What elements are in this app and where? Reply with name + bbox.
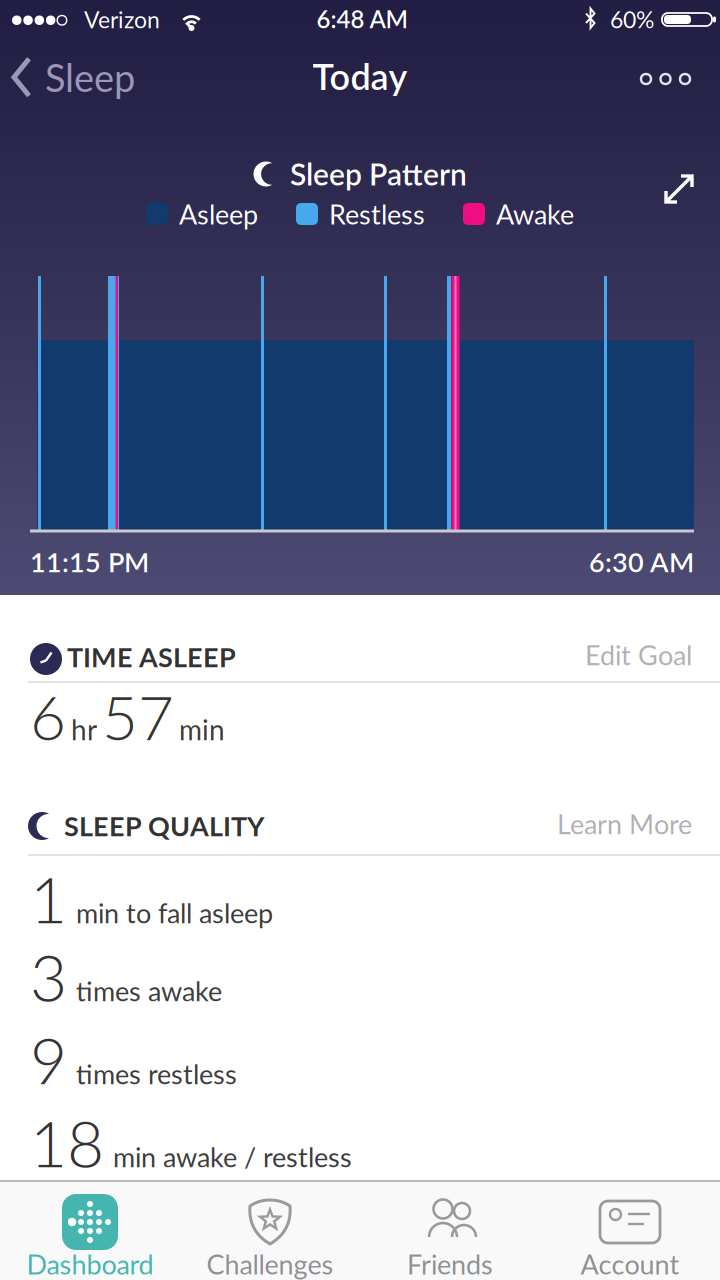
staticText: Sleep (45, 55, 135, 99)
button[interactable]: Edit Goal (0, 0, 692, 32)
staticText: 60% (610, 6, 654, 33)
staticText: times restless (76, 1058, 237, 1090)
staticText: min (179, 713, 225, 746)
button[interactable]: Challenges (0, 1180, 180, 1280)
button[interactable]: Dashboard (0, 1180, 180, 1280)
staticText: Account (580, 1248, 679, 1280)
staticText: Asleep (179, 198, 258, 230)
staticText: 6 (30, 680, 66, 752)
staticText: Challenges (206, 1248, 333, 1280)
staticText: times awake (76, 975, 222, 1007)
staticText: SLEEP QUALITY (64, 810, 264, 842)
staticText: 1 (30, 861, 67, 936)
button[interactable]: Friends (0, 1180, 180, 1280)
staticText: 18 (30, 1105, 104, 1180)
staticText: Awake (496, 198, 574, 230)
staticText: 6:48 AM (316, 5, 407, 33)
staticText: 9 (30, 1022, 67, 1097)
staticText: Restless (329, 198, 425, 230)
staticText: 11:15 PM (30, 546, 149, 578)
staticText: Edit Goal (585, 639, 692, 671)
staticText: Dashboard (26, 1248, 153, 1280)
staticText: 57 (102, 680, 174, 752)
staticText: Today (312, 55, 407, 97)
staticText: 3 (30, 939, 67, 1014)
staticText: 6:30 AM (589, 546, 694, 578)
staticText: min to fall asleep (76, 897, 273, 929)
staticText: hr (71, 713, 97, 746)
button[interactable] (0, 0, 34, 34)
staticText: Verizon (84, 6, 160, 33)
staticText: Sleep Pattern (290, 156, 467, 191)
staticText: Friends (407, 1248, 493, 1280)
button[interactable]: Sleep (0, 0, 124, 44)
button[interactable]: Account (0, 1180, 180, 1280)
staticText: Learn More (557, 808, 692, 840)
staticText: min awake / restless (113, 1141, 352, 1173)
staticText: TIME ASLEEP (67, 641, 236, 673)
button[interactable]: Learn More (0, 0, 692, 32)
